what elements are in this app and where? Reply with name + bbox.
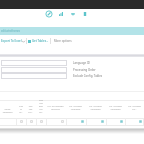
button[interactable]: Cell	[66, 118, 86, 125]
button[interactable]: Get Tables...	[28, 37, 49, 45]
button[interactable]: Show Template	[0, 94, 16, 115]
button[interactable]: No. of Rows Validated	[106, 94, 125, 115]
button[interactable]: No. of Rows Available	[66, 94, 86, 115]
button[interactable]: More options	[54, 37, 72, 45]
staticText: Export To Excel	[1, 39, 22, 43]
button[interactable]: Cell	[16, 118, 26, 125]
button[interactable]: Toggle	[61, 120, 64, 123]
staticText: No. of Rows Fa…	[128, 105, 141, 111]
button[interactable]: Toggle	[120, 120, 123, 123]
staticText: Get Tables...	[32, 39, 49, 43]
staticText: No. of Rows Available	[69, 105, 82, 111]
staticText: Language ID	[73, 61, 90, 65]
button[interactable]: Export To Excel	[1, 37, 22, 45]
button[interactable]: Skip Tabl Pro…	[26, 94, 36, 115]
button[interactable]: No. of Package Records	[46, 94, 66, 115]
button[interactable]: Edit	[45, 10, 53, 18]
button[interactable]: Language ID	[1, 60, 67, 66]
button[interactable]: No. of Rows Fa…	[125, 94, 144, 115]
button[interactable]: Crea te Te…	[16, 94, 26, 115]
button[interactable]: Toggle	[20, 120, 23, 123]
staticText: Processing Order	[73, 68, 96, 72]
staticText: More options	[54, 39, 72, 43]
button[interactable]: Cell	[26, 118, 36, 125]
button[interactable]: Cell	[86, 118, 106, 125]
button[interactable]: Toggle	[139, 120, 142, 123]
staticText: Dele Tabl Befo Filli Da…	[39, 99, 43, 114]
button[interactable]: Cell	[0, 118, 16, 125]
button[interactable]: Toggle	[81, 120, 84, 123]
staticText: Show Template	[0, 108, 15, 114]
staticText: Exclude Config. Tables	[73, 74, 103, 78]
button[interactable]: No. of Table Validated	[86, 94, 106, 115]
button[interactable]: Toggle	[30, 120, 33, 123]
staticText: No. of Table Validated	[89, 105, 102, 111]
staticText: Crea te Te…	[19, 105, 23, 114]
button[interactable]: Toggle	[101, 120, 104, 123]
button[interactable]: Filter	[69, 10, 77, 18]
button[interactable]: Processing Order	[1, 67, 67, 73]
button[interactable]: Cell	[106, 118, 125, 125]
staticText: No. of Rows Validated	[109, 105, 122, 111]
staticText: Skip Tabl Pro…	[28, 105, 33, 114]
button[interactable]: Dele Tabl Befo Filli Da…	[36, 94, 46, 115]
button[interactable]: Cell	[46, 118, 66, 125]
button[interactable]: Cell	[125, 118, 144, 125]
staticText: edit wireframes	[1, 29, 21, 33]
staticText: No. of Package Records	[47, 105, 64, 111]
button[interactable]: Exclude Config. Tables	[1, 73, 67, 79]
button[interactable]: Delete	[81, 10, 89, 18]
button[interactable]: Chart	[57, 10, 65, 18]
button[interactable]: Cell	[36, 118, 46, 125]
button[interactable]: Toggle	[40, 120, 43, 123]
